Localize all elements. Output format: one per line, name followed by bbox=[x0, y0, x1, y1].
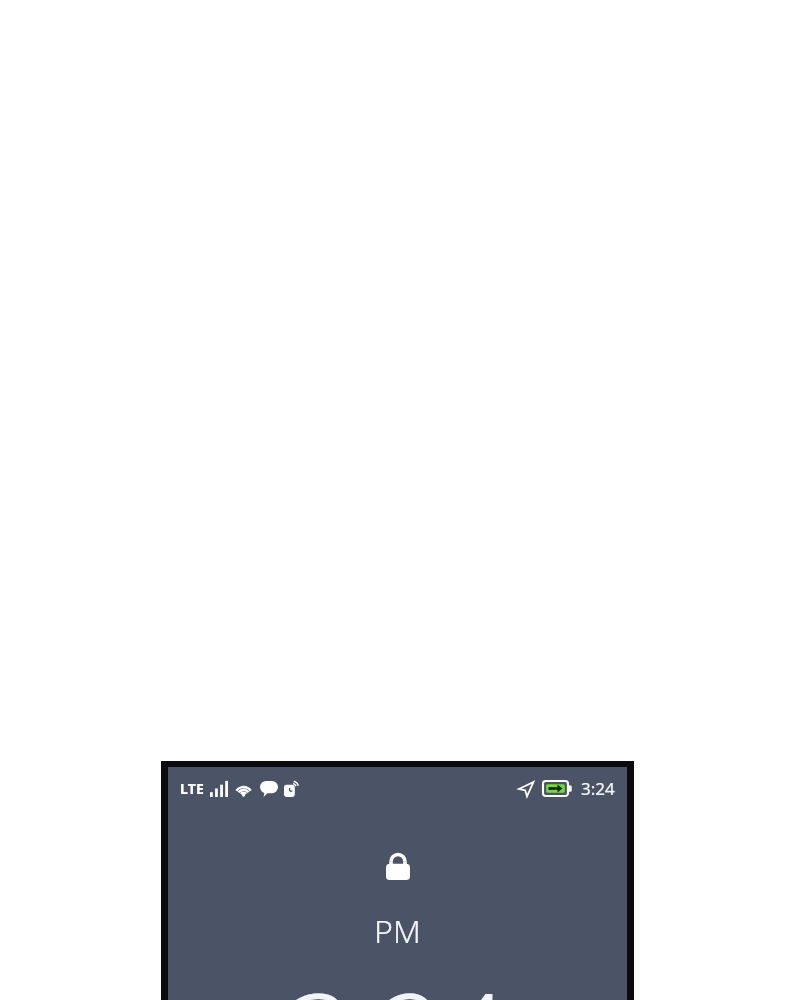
button[interactable]: Unlock bbox=[376, 843, 420, 887]
staticText: PM bbox=[168, 909, 627, 953]
staticText: 3:24 bbox=[581, 777, 615, 800]
staticText: LTE bbox=[180, 779, 205, 798]
staticText: 3:24 bbox=[168, 955, 627, 1000]
